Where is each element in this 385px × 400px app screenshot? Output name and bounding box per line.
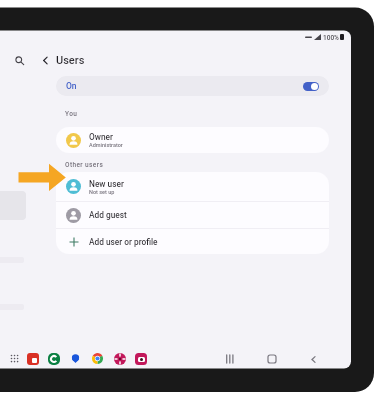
button[interactable]: All apps xyxy=(7,351,21,365)
button[interactable]: Owner xyxy=(56,127,329,153)
button[interactable]: Recents xyxy=(223,352,237,366)
staticText: New user xyxy=(89,179,124,189)
staticText: 100% xyxy=(323,34,339,40)
button[interactable]: On xyxy=(56,76,329,96)
button[interactable]: Add user or profile xyxy=(56,229,329,254)
staticText: On xyxy=(66,81,77,91)
staticText: Users xyxy=(56,54,85,67)
button[interactable]: App xyxy=(47,352,60,365)
staticText: Owner xyxy=(89,132,113,142)
staticText: Not set up xyxy=(89,189,115,195)
button[interactable]: App xyxy=(26,352,39,365)
staticText: Other users xyxy=(65,161,104,169)
button[interactable]: Search xyxy=(10,51,29,70)
button[interactable]: App xyxy=(91,352,104,365)
button[interactable]: Home xyxy=(265,352,279,366)
button[interactable]: App xyxy=(113,352,126,365)
button[interactable]: App xyxy=(69,352,82,365)
staticText: You xyxy=(65,110,78,118)
button[interactable]: App xyxy=(134,352,147,365)
staticText: Add guest xyxy=(89,210,127,220)
button[interactable]: Back xyxy=(306,352,320,366)
button[interactable]: Navigate up xyxy=(36,51,55,70)
button[interactable]: Add guest xyxy=(56,202,329,228)
button[interactable]: New user xyxy=(56,172,329,201)
staticText: Add user or profile xyxy=(89,237,158,247)
button[interactable]: Toggle users xyxy=(303,82,319,91)
staticText: Administrator xyxy=(89,142,123,148)
